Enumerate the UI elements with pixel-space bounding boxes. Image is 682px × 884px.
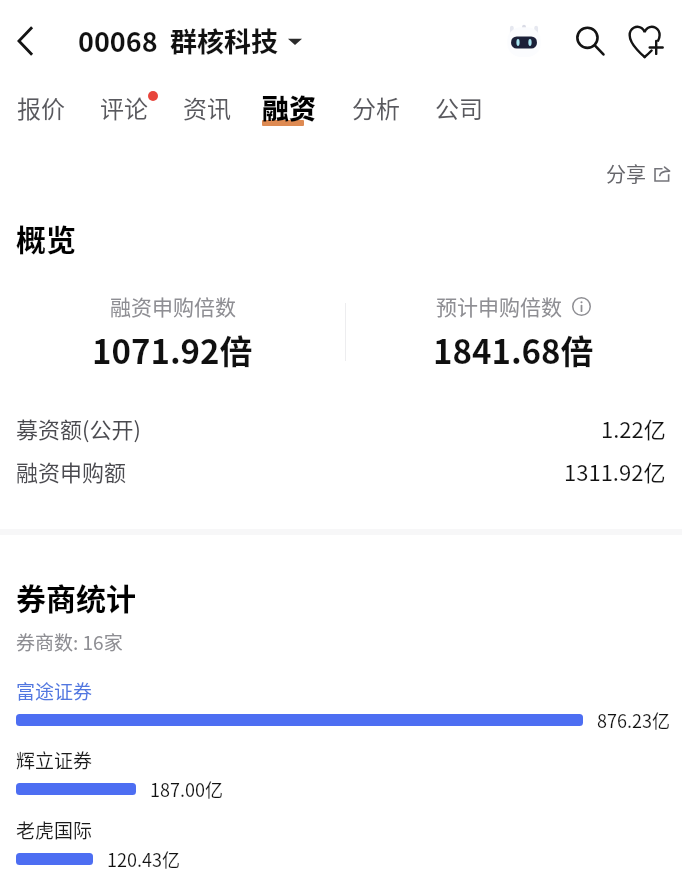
staticText: 老虎国际 [16, 816, 93, 844]
staticText: 概览 [16, 216, 76, 259]
staticText: 融资申购倍数 [110, 291, 236, 321]
staticText: 分享 [606, 159, 646, 188]
staticText: 预计申购倍数 [436, 291, 562, 321]
staticText: 分析 [352, 90, 400, 125]
staticText: 券商统计 [16, 575, 136, 618]
staticText: 融资申购额 [16, 455, 127, 487]
staticText: 1841.68倍 [433, 326, 594, 374]
staticText: 报价 [17, 90, 65, 125]
button[interactable]: 分享 [600, 154, 677, 193]
button[interactable]: 报价 [5, 84, 77, 131]
button[interactable]: 老虎国际 [0, 816, 682, 872]
button[interactable]: 公司 [423, 84, 495, 131]
button[interactable]: 辉立证券 [0, 746, 682, 802]
button[interactable]: Info [572, 297, 591, 316]
staticText: 募资额(公开) [16, 412, 141, 444]
staticText: 876.23亿 [597, 707, 670, 733]
staticText: 00068 群核科技 [78, 21, 278, 60]
staticText: 辉立证券 [16, 746, 93, 774]
button[interactable]: 00068 群核科技 [78, 21, 302, 60]
button[interactable]: Back [2, 17, 50, 65]
staticText: 1311.92亿 [564, 455, 666, 487]
button[interactable]: 资讯 [171, 84, 243, 131]
staticText: 评论 [100, 90, 148, 125]
button[interactable]: 分析 [340, 84, 412, 131]
staticText: 富途证券 [16, 677, 93, 705]
button[interactable]: Search [566, 17, 614, 65]
staticText: 120.43亿 [107, 846, 180, 872]
staticText: 1071.92倍 [92, 326, 253, 374]
staticText: 187.00亿 [150, 776, 223, 802]
staticText: 融资 [262, 88, 316, 127]
button[interactable]: AI assistant [500, 17, 548, 65]
staticText: 券商数: 16家 [16, 628, 123, 656]
staticText: 资讯 [183, 90, 231, 125]
button[interactable]: Add to watchlist [622, 17, 670, 65]
button[interactable]: 评论 [88, 84, 160, 131]
staticText: 公司 [435, 90, 483, 125]
button[interactable]: 富途证券 [0, 677, 682, 733]
staticText: 1.22亿 [601, 412, 666, 444]
button[interactable]: 融资 [250, 82, 328, 133]
